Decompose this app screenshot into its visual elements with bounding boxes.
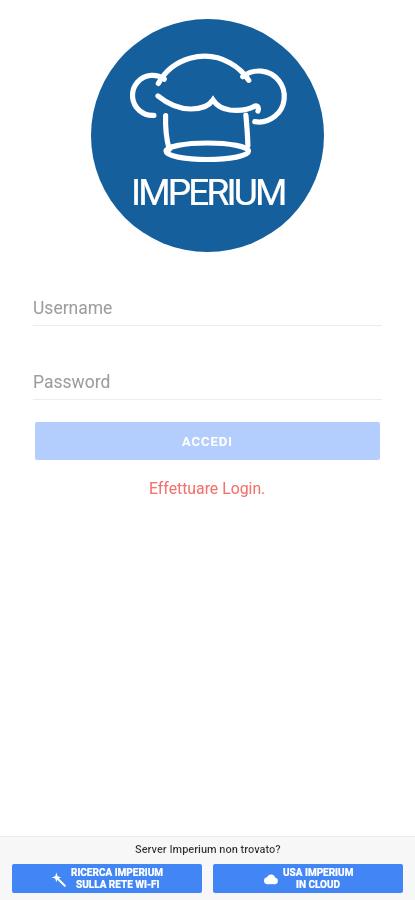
staticText: Effettuare Login.	[149, 479, 266, 498]
staticText: IN CLOUD	[296, 879, 341, 891]
button[interactable]: Username	[33, 298, 382, 326]
button[interactable]: USA IMPERIUM	[213, 864, 403, 893]
staticText: IMPERIUM	[131, 171, 285, 214]
staticText: RICERCA IMPERIUM	[71, 867, 164, 879]
button[interactable]: ACCEDI	[35, 422, 380, 460]
staticText: ACCEDI	[182, 434, 234, 449]
button[interactable]: RICERCA IMPERIUM	[12, 864, 202, 893]
staticText: Password	[33, 372, 111, 393]
button[interactable]: Password	[33, 372, 382, 400]
staticText: Server Imperium non trovato?	[135, 843, 281, 856]
staticText: Username	[33, 298, 113, 319]
staticText: USA IMPERIUM	[283, 867, 354, 879]
staticText: SULLA RETE WI-FI	[76, 879, 160, 891]
